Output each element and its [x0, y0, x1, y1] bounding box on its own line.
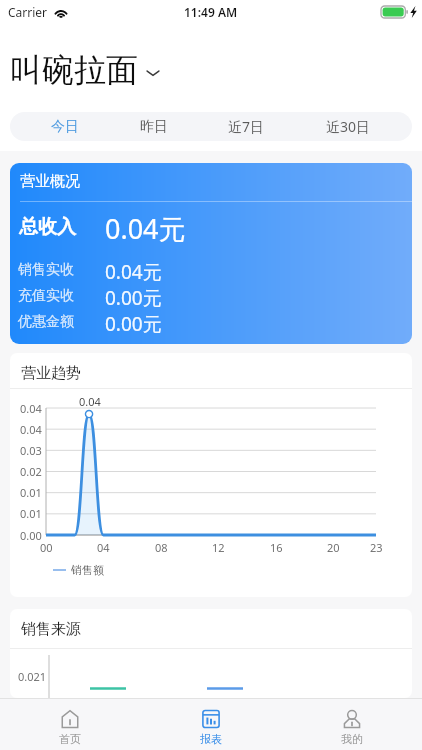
staticText: 0.01	[20, 485, 42, 500]
staticText: 0.00元	[105, 311, 162, 333]
staticText: 0.021	[18, 669, 47, 684]
staticText: 昨日	[140, 118, 168, 136]
button[interactable]: 近30日	[316, 113, 381, 140]
staticText: 近7日	[228, 117, 265, 136]
button[interactable]: 昨日	[130, 114, 178, 140]
staticText: 0.04元	[105, 210, 186, 247]
staticText: 11:49 AM	[184, 4, 238, 20]
staticText: 营业趋势	[21, 364, 81, 383]
staticText: 20	[327, 540, 340, 555]
staticText: 叫碗拉面	[10, 50, 138, 90]
button[interactable]: Home	[0, 699, 140, 750]
staticText: 0.03	[20, 443, 42, 458]
staticText: Carrier	[8, 4, 48, 20]
staticText: 销售来源	[21, 620, 81, 639]
staticText: 23	[370, 540, 383, 555]
button[interactable]: 叫碗拉面	[10, 46, 166, 90]
button[interactable]: Reports	[140, 699, 281, 750]
staticText: 16	[270, 540, 283, 555]
staticText: 0.04	[79, 394, 101, 409]
staticText: 0.01	[20, 506, 42, 521]
staticText: 0.02	[20, 464, 42, 479]
staticText: 报表	[200, 732, 222, 746]
staticText: 08	[155, 540, 168, 555]
staticText: 0.04	[20, 401, 42, 416]
staticText: 0.00	[20, 528, 42, 543]
staticText: 近30日	[326, 117, 371, 136]
staticText: 04	[97, 540, 110, 555]
staticText: 充值实收	[18, 287, 74, 305]
staticText: 优惠金额	[18, 313, 74, 331]
staticText: 总收入	[19, 215, 76, 239]
staticText: 销售额	[71, 563, 104, 577]
button[interactable]: Profile	[281, 699, 422, 750]
staticText: 0.04	[20, 422, 42, 437]
staticText: 12	[212, 540, 225, 555]
staticText: 今日	[51, 118, 79, 136]
staticText: 营业概况	[20, 172, 80, 191]
button[interactable]: 今日	[41, 114, 89, 140]
staticText: 销售实收	[18, 261, 74, 279]
staticText: 00	[40, 540, 53, 555]
staticText: 首页	[59, 732, 81, 746]
button[interactable]: 近7日	[218, 113, 275, 140]
staticText: 我的	[341, 732, 363, 746]
staticText: 0.00元	[105, 285, 162, 307]
staticText: 0.04元	[105, 259, 162, 281]
